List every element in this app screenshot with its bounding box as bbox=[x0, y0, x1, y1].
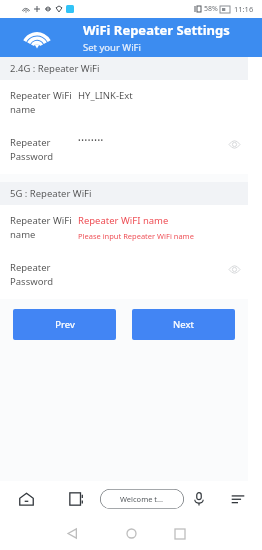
staticText: •••••••• bbox=[78, 136, 104, 146]
staticText: Repeater Password bbox=[10, 136, 78, 163]
staticText: Next bbox=[173, 318, 194, 331]
button[interactable]: Back bbox=[52, 517, 92, 550]
staticText: Repeater WiFi name bbox=[10, 214, 78, 241]
staticText: Please input Repeater WiFi name bbox=[78, 231, 194, 241]
staticText: Repeater WiFI name bbox=[78, 214, 169, 227]
staticText: Set your WiFi bbox=[83, 41, 141, 54]
staticText: WiFi Repeater Settings bbox=[83, 21, 230, 39]
button[interactable]: Repeater Password bbox=[0, 252, 248, 299]
staticText: Welcome t... bbox=[120, 494, 164, 504]
button[interactable]: Home bbox=[111, 517, 151, 550]
button[interactable]: Prev bbox=[13, 309, 116, 340]
staticText: Prev bbox=[55, 318, 75, 331]
staticText: 11:16 bbox=[234, 4, 254, 14]
button[interactable]: Menu bbox=[214, 481, 262, 517]
button[interactable]: Repeater WiFi name bbox=[0, 80, 248, 127]
staticText: Repeater Password bbox=[10, 261, 78, 288]
button[interactable]: Voice search bbox=[184, 481, 214, 517]
button[interactable]: Tabs bbox=[52, 481, 100, 517]
button[interactable]: Welcome t... bbox=[100, 489, 184, 509]
button[interactable]: Next bbox=[132, 309, 235, 340]
staticText: HY_LINK-Ext bbox=[78, 89, 133, 102]
button[interactable]: Repeater Password bbox=[0, 127, 248, 174]
button[interactable]: Show password bbox=[226, 261, 242, 277]
staticText: 2.4G : Repeater WiFi bbox=[10, 62, 100, 75]
staticText: 58% bbox=[204, 4, 218, 14]
staticText: 5G : Repeater WiFi bbox=[10, 187, 92, 200]
button[interactable]: Home bbox=[0, 481, 52, 517]
button[interactable]: Show password bbox=[226, 136, 242, 152]
button[interactable]: Recent apps bbox=[160, 517, 200, 550]
staticText: Repeater WiFi name bbox=[10, 89, 78, 116]
button[interactable]: Repeater WiFi name bbox=[0, 205, 248, 252]
